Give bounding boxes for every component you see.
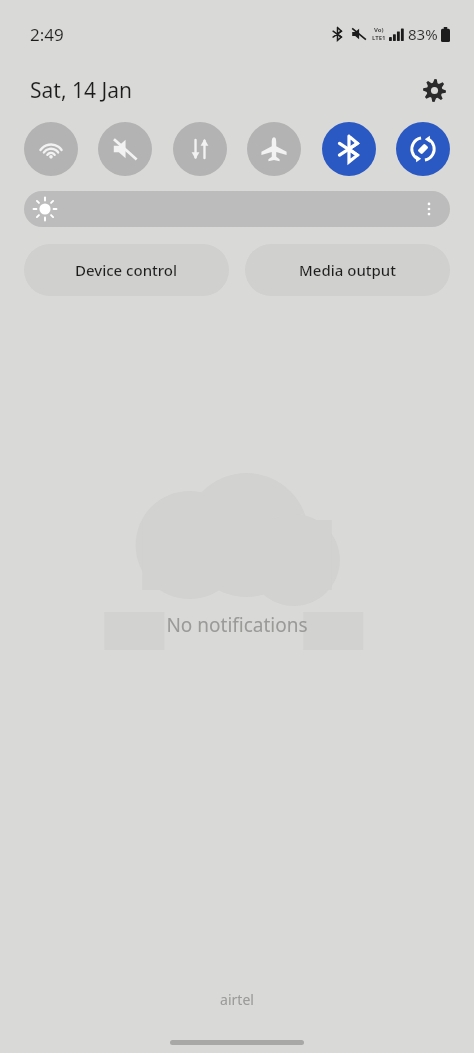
button[interactable]: Media output: [245, 244, 450, 296]
button[interactable]: Device control: [24, 244, 229, 296]
staticText: Device control: [75, 260, 178, 280]
button[interactable]: Mobile data: [173, 122, 227, 176]
staticText: LTE1: [372, 34, 386, 42]
button[interactable]: Sound off: [98, 122, 152, 176]
button[interactable]: Wi-Fi: [24, 122, 78, 176]
button[interactable]: Bluetooth: [322, 122, 376, 176]
button[interactable]: Settings: [416, 72, 452, 108]
staticText: Vo): [374, 26, 384, 34]
staticText: Sat, 14 Jan: [30, 76, 132, 105]
staticText: 83%: [408, 24, 438, 44]
staticText: Media output: [299, 260, 396, 280]
button[interactable]: Auto rotate: [396, 122, 450, 176]
button[interactable]: Brightness options: [24, 191, 450, 227]
button[interactable]: Brightness options: [414, 194, 444, 224]
button[interactable]: Airplane mode: [247, 122, 301, 176]
staticText: airtel: [0, 990, 474, 1009]
staticText: 2:49: [30, 23, 64, 46]
staticText: No notifications: [166, 612, 308, 638]
